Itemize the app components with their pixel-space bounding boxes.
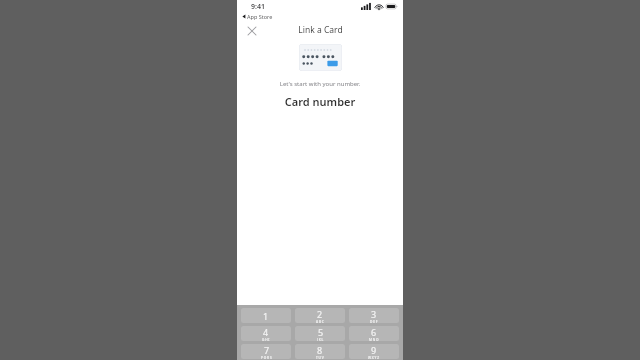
staticText: W X Y Z	[368, 356, 380, 359]
staticText: D E F	[370, 320, 378, 323]
staticText: App Store	[247, 13, 273, 20]
button[interactable]: Close	[244, 23, 259, 38]
button[interactable]: 7	[241, 344, 291, 359]
staticText: 2	[317, 308, 323, 320]
staticText: Let's start with your number.	[237, 80, 403, 88]
staticText: 9	[371, 344, 377, 356]
staticText: A B C	[316, 320, 324, 323]
button[interactable]: 6	[349, 326, 399, 341]
staticText: G H I	[262, 338, 270, 341]
button[interactable]: App Store	[241, 13, 274, 20]
staticText: 6	[371, 326, 377, 338]
staticText: J K L	[317, 338, 324, 341]
staticText: P Q R S	[261, 356, 272, 359]
button[interactable]: 3	[349, 308, 399, 323]
staticText: 7	[264, 344, 270, 356]
staticText: Card number	[237, 94, 403, 109]
staticText: 5	[318, 326, 324, 338]
button[interactable]: 8	[295, 344, 345, 359]
staticText: 4	[263, 326, 269, 338]
button[interactable]: 5	[295, 326, 345, 341]
staticText: 8	[317, 344, 323, 356]
button[interactable]: 1	[241, 308, 291, 323]
staticText: 3	[371, 308, 377, 320]
button[interactable]: 2	[295, 308, 345, 323]
staticText: 1	[263, 310, 269, 322]
button[interactable]: 9	[349, 344, 399, 359]
staticText: Link a Card	[298, 24, 343, 36]
button[interactable]: 4	[241, 326, 291, 341]
staticText: M N O	[369, 338, 379, 341]
staticText: 9:41	[251, 2, 265, 12]
staticText: T U V	[316, 356, 324, 359]
